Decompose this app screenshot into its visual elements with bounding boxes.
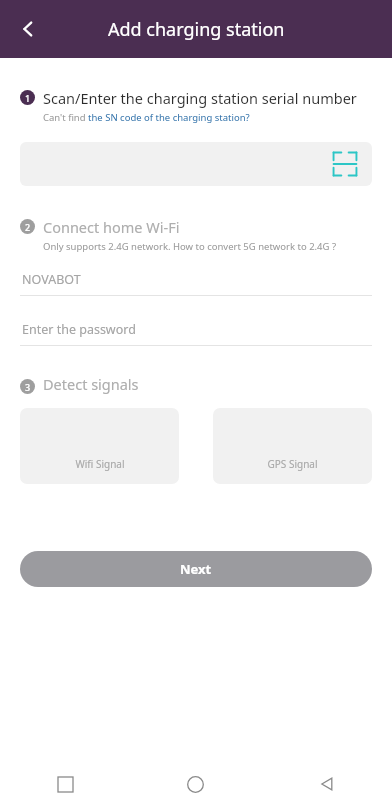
staticText: Enter the password <box>22 321 136 338</box>
staticText: 3 <box>25 381 31 393</box>
button[interactable]: Next <box>20 551 372 587</box>
staticText: 1 <box>25 92 31 104</box>
button[interactable]: GPS Signal <box>213 408 372 484</box>
staticText: Detect signals <box>43 374 139 394</box>
staticText: NOVABOT <box>22 271 81 288</box>
button[interactable]: Back <box>6 7 50 51</box>
button[interactable]: NOVABOT <box>20 267 372 296</box>
staticText: GPS Signal <box>267 457 318 471</box>
button[interactable]: Enter the password <box>20 317 372 346</box>
button[interactable]: Recents <box>0 758 130 810</box>
button[interactable]: Back <box>261 758 392 810</box>
staticText: Scan/Enter the charging station serial n… <box>43 88 357 108</box>
staticText: Connect home Wi-Fi <box>43 217 180 237</box>
staticText: 2 <box>25 221 31 233</box>
button[interactable]: Home <box>130 758 261 810</box>
staticText: Can't find the SN code of the charging s… <box>43 111 250 124</box>
staticText: Add charging station <box>108 17 285 42</box>
button[interactable]: Scan serial number <box>332 151 358 177</box>
button[interactable]: Scan serial number <box>20 142 372 186</box>
staticText: Next <box>180 560 212 578</box>
staticText: Only supports 2.4G network. How to conve… <box>43 240 337 253</box>
staticText: Wifi Signal <box>75 457 125 471</box>
button[interactable]: Wifi Signal <box>20 408 179 484</box>
